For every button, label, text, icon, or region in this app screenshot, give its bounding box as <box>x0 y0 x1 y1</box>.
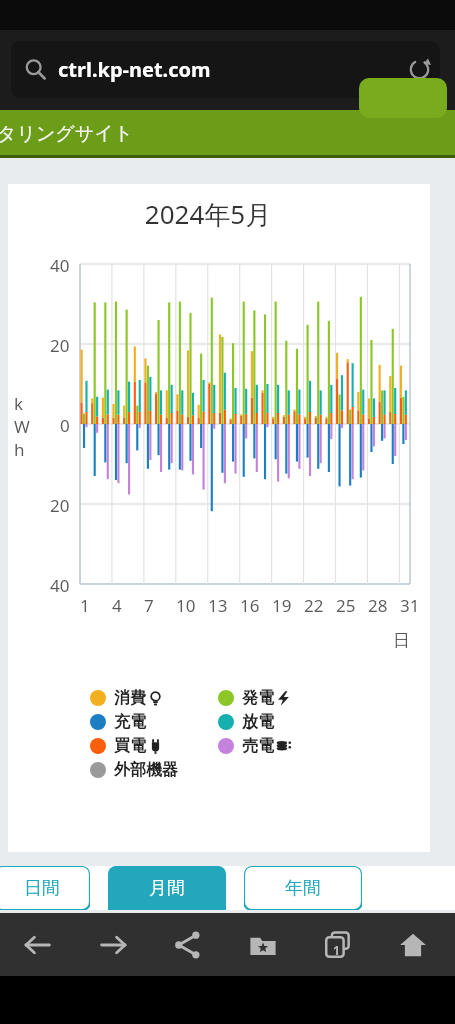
staticText: 31 <box>400 594 420 617</box>
staticText: 16 <box>240 594 260 617</box>
staticText: 年間 <box>285 877 321 900</box>
button[interactable]: 外部機器 <box>90 758 178 782</box>
button[interactable]: Tabs <box>300 913 375 976</box>
button[interactable]: Back <box>0 913 75 976</box>
button[interactable]: Reload <box>407 57 432 82</box>
button[interactable]: 充電 <box>90 710 146 734</box>
button[interactable]: 買電 <box>90 734 163 758</box>
staticText: W <box>14 415 30 438</box>
staticText: 7 <box>144 594 154 617</box>
staticText: 4 <box>112 594 122 617</box>
staticText: 22 <box>304 594 324 617</box>
staticText: 10 <box>176 594 196 617</box>
staticText: h <box>14 438 25 461</box>
button[interactable]: 年間 <box>244 866 362 910</box>
staticText: 消費 <box>114 688 146 708</box>
staticText: 外部機器 <box>114 760 178 780</box>
button[interactable]: 放電 <box>218 710 274 734</box>
button[interactable]: 売電 <box>218 734 292 758</box>
staticText: 放電 <box>242 712 274 732</box>
staticText: 充電 <box>114 712 146 732</box>
button[interactable]: Bookmarks <box>225 913 300 976</box>
staticText: 40 <box>50 574 70 597</box>
staticText: 発電 <box>242 688 274 708</box>
staticText: 19 <box>272 594 292 617</box>
button[interactable]: 月間 <box>108 866 226 910</box>
staticText: 20 <box>50 334 70 357</box>
staticText: 1 <box>80 594 90 617</box>
staticText: タリングサイト <box>0 122 134 146</box>
staticText: 28 <box>368 594 388 617</box>
staticText: 2024年5月 <box>8 196 408 232</box>
other: Search <box>24 58 47 81</box>
staticText: 13 <box>208 594 228 617</box>
staticText: 20 <box>50 494 70 517</box>
staticText: 0 <box>60 414 70 437</box>
staticText: 25 <box>336 594 356 617</box>
button[interactable]: Forward <box>75 913 150 976</box>
button[interactable]: 発電 <box>218 686 291 710</box>
staticText: 買電 <box>114 736 146 756</box>
staticText: k <box>14 392 24 415</box>
staticText: ctrl.kp-net.com <box>58 56 211 83</box>
button[interactable]: Home <box>375 913 450 976</box>
button[interactable]: 日間 <box>0 866 90 910</box>
staticText: 月間 <box>149 877 185 900</box>
staticText: 売電 <box>242 736 274 756</box>
staticText: 日間 <box>24 877 60 900</box>
staticText: 1 <box>333 942 340 958</box>
button[interactable]: 消費 <box>90 686 163 710</box>
button[interactable] <box>359 78 447 118</box>
staticText: 日 <box>393 630 410 651</box>
button[interactable]: Search <box>11 41 440 98</box>
button[interactable]: Share <box>150 913 225 976</box>
staticText: 40 <box>50 254 70 277</box>
